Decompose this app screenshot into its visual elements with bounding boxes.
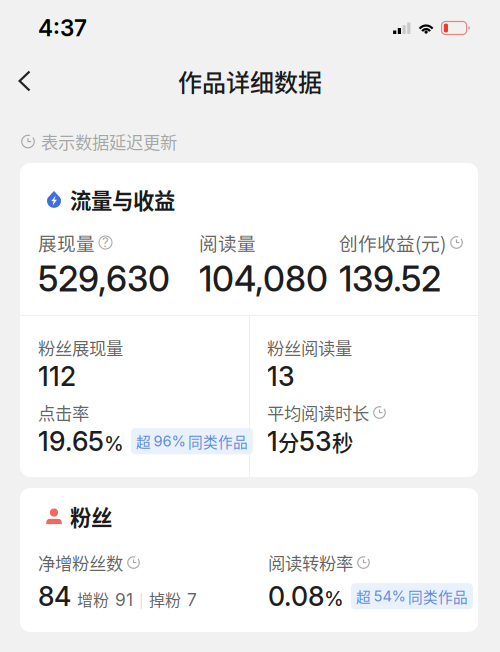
staticText: 掉粉: [149, 587, 181, 611]
staticText: 139.52: [339, 258, 441, 300]
staticText: 超: [136, 431, 151, 452]
staticText: |: [139, 593, 143, 609]
staticText: 秒: [332, 426, 353, 457]
staticText: 19.65: [38, 425, 104, 457]
staticText: 粉丝: [70, 501, 112, 532]
staticText: 流量与收益: [70, 184, 175, 215]
staticText: 增粉: [77, 587, 109, 611]
staticText: 同类作品: [408, 586, 468, 607]
staticText: 1: [267, 425, 278, 457]
staticText: 91: [115, 589, 133, 610]
staticText: 104,080: [199, 258, 328, 300]
staticText: 阅读量: [199, 229, 256, 256]
staticText: 53: [299, 425, 332, 457]
staticText: 点击率: [38, 400, 89, 425]
staticText: %: [104, 432, 124, 456]
staticText: 平均阅读时长: [267, 400, 369, 425]
staticText: 净增粉丝数: [38, 550, 123, 575]
staticText: 粉丝展现量: [38, 335, 123, 360]
staticText: 54%: [373, 587, 405, 605]
staticText: 4:37: [38, 14, 87, 42]
staticText: 0.08: [268, 580, 324, 612]
staticText: 96%: [153, 432, 185, 450]
staticText: 展现量: [38, 229, 95, 256]
staticText: 超: [356, 586, 371, 607]
staticText: 创作收益(元): [339, 229, 446, 256]
button[interactable]: Back: [0, 58, 49, 104]
staticText: 529,630: [38, 258, 170, 300]
staticText: 阅读转粉率: [268, 550, 353, 575]
staticText: %: [324, 587, 344, 611]
staticText: 同类作品: [188, 431, 248, 452]
staticText: 112: [38, 360, 76, 392]
staticText: 7: [187, 589, 197, 610]
staticText: ?: [102, 234, 109, 250]
staticText: 13: [267, 360, 295, 392]
staticText: 表示数据延迟更新: [41, 129, 177, 154]
staticText: 84: [38, 580, 71, 612]
staticText: 粉丝阅读量: [267, 335, 352, 360]
staticText: 作品详细数据: [178, 64, 322, 98]
staticText: 分: [278, 426, 299, 457]
